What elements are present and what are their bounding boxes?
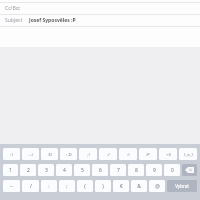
staticText: ~: [10, 183, 13, 190]
button[interactable]: Vybrat: [167, 180, 197, 192]
staticText: :/: [107, 152, 110, 157]
staticText: 6: [99, 167, 102, 174]
staticText: /: [30, 183, 32, 190]
button[interactable]: Backspace: [182, 164, 197, 176]
button[interactable]: (_o_): [179, 148, 197, 160]
button[interactable]: :-): [22, 148, 39, 160]
button[interactable]: ~: [3, 180, 20, 192]
staticText: 7: [117, 167, 120, 174]
button[interactable]: 9: [146, 164, 162, 176]
staticText: 2: [27, 167, 30, 174]
staticText: ;: [66, 183, 68, 190]
button[interactable]: Subject: [0, 15, 200, 26]
staticText: :P: [146, 152, 150, 157]
staticText: ;): [87, 152, 90, 157]
button[interactable]: :): [3, 148, 20, 160]
staticText: :D: [48, 152, 52, 157]
staticText: Vybrat: [175, 183, 189, 189]
staticText: €: [120, 183, 123, 190]
staticText: Subject: [5, 17, 23, 24]
button[interactable]: 5: [74, 164, 90, 176]
button[interactable]: :: [41, 180, 57, 192]
staticText: <3: [166, 152, 171, 157]
staticText: &: [137, 183, 141, 190]
button[interactable]: /: [22, 180, 39, 192]
button[interactable]: &: [131, 180, 147, 192]
button[interactable]: 2: [20, 164, 36, 176]
staticText: 4: [63, 167, 66, 174]
button[interactable]: ;): [79, 148, 97, 160]
staticText: Josef Syposvěles :P: [29, 17, 76, 24]
staticText: :): [10, 152, 13, 157]
button[interactable]: (: [77, 180, 93, 192]
staticText: 3: [45, 167, 48, 174]
staticText: :(: [127, 152, 130, 157]
button[interactable]: 0: [164, 164, 180, 176]
button[interactable]: :D: [41, 148, 58, 160]
button[interactable]: :(: [119, 148, 137, 160]
staticText: :-D: [66, 152, 72, 157]
staticText: 8: [135, 167, 138, 174]
button[interactable]: 1: [3, 164, 18, 176]
staticText: 5: [81, 167, 84, 174]
button[interactable]: 6: [92, 164, 108, 176]
staticText: :-): [29, 152, 33, 157]
button[interactable]: :P: [139, 148, 157, 160]
button[interactable]: 8: [128, 164, 144, 176]
staticText: 9: [153, 167, 156, 174]
button[interactable]: 7: [110, 164, 126, 176]
staticText: ): [102, 183, 104, 190]
button[interactable]: @: [149, 180, 165, 192]
staticText: (: [84, 183, 86, 190]
staticText: @: [155, 183, 160, 190]
button[interactable]: ): [95, 180, 111, 192]
staticText: (_o_): [184, 152, 193, 157]
button[interactable]: Cc/Bcc: [0, 3, 200, 14]
button[interactable]: :-D: [60, 148, 77, 160]
staticText: 1: [9, 167, 12, 174]
button[interactable]: :/: [99, 148, 117, 160]
button[interactable]: 4: [56, 164, 72, 176]
button[interactable]: ;: [59, 180, 75, 192]
button[interactable]: 3: [38, 164, 54, 176]
staticText: 0: [171, 167, 174, 174]
button[interactable]: <3: [159, 148, 177, 160]
staticText: :: [48, 183, 50, 190]
button[interactable]: €: [113, 180, 129, 192]
staticText: Cc/Bcc: [5, 5, 21, 12]
